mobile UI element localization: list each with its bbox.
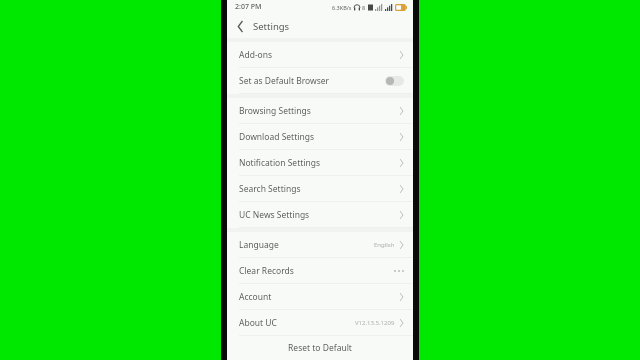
button[interactable]: Add-ons: [227, 42, 413, 67]
button[interactable]: Reset to Default: [227, 336, 413, 360]
staticText: Browsing Settings: [239, 105, 311, 117]
button[interactable]: Clear Records: [227, 258, 413, 283]
staticText: Download Settings: [239, 131, 314, 143]
staticText: English: [374, 241, 395, 249]
staticText: 8: [362, 4, 366, 11]
staticText: UC News Settings: [239, 209, 310, 221]
staticText: 6.3KB/s: [332, 4, 352, 11]
button[interactable]: Browsing Settings: [227, 98, 413, 123]
button[interactable]: UC News Settings: [227, 202, 413, 227]
staticText: V12.13.5.1209: [355, 319, 395, 327]
staticText: Language: [239, 239, 279, 251]
button[interactable]: Set as Default Browser: [227, 68, 413, 93]
staticText: Notification Settings: [239, 157, 321, 169]
staticText: About UC: [239, 317, 277, 329]
button[interactable]: Notification Settings: [227, 150, 413, 175]
button[interactable]: Language: [227, 232, 413, 257]
staticText: Reset to Default: [288, 342, 352, 354]
staticText: Clear Records: [239, 265, 294, 277]
staticText: Set as Default Browser: [239, 75, 330, 87]
staticText: 2:07 PM: [235, 2, 262, 12]
staticText: Search Settings: [239, 183, 301, 195]
staticText: Settings: [253, 20, 290, 33]
button[interactable]: Account: [227, 284, 413, 309]
staticText: Account: [239, 291, 272, 303]
button[interactable]: Back: [227, 14, 253, 38]
button[interactable]: Search Settings: [227, 176, 413, 201]
staticText: Add-ons: [239, 49, 273, 61]
button[interactable]: Download Settings: [227, 124, 413, 149]
button[interactable]: About UC: [227, 310, 413, 335]
